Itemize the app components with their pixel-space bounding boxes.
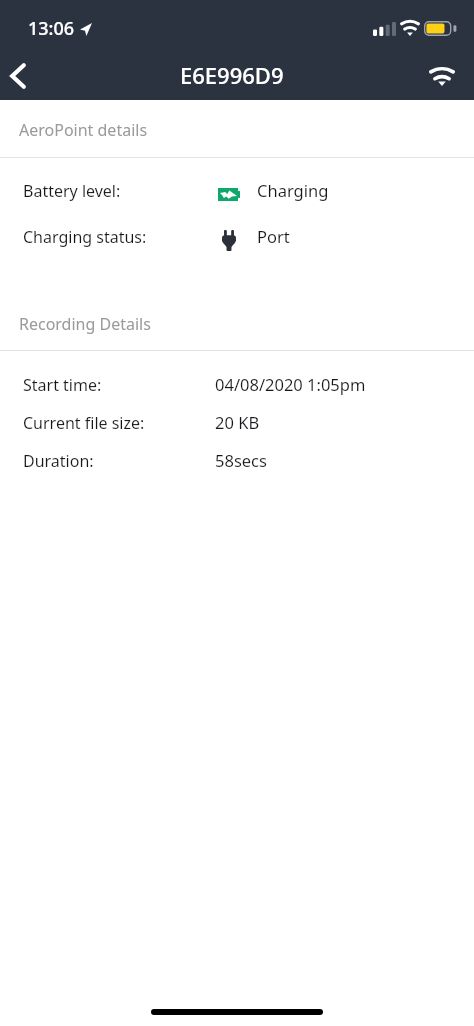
button[interactable]: Wi-Fi <box>416 48 468 100</box>
staticText: 58secs <box>215 449 267 471</box>
staticText: Battery level: <box>23 180 121 202</box>
staticText: Duration: <box>23 450 94 472</box>
staticText: Port <box>257 225 290 247</box>
staticText: Current file size: <box>23 412 145 434</box>
staticText: Recording Details <box>19 313 151 335</box>
other: Battery charging <box>218 188 240 201</box>
button[interactable]: Back <box>0 48 40 100</box>
button[interactable]: Start time: <box>0 363 474 401</box>
staticText: 20 KB <box>215 411 260 433</box>
button[interactable]: Duration: <box>0 439 474 477</box>
other: Power plug <box>222 230 236 251</box>
button[interactable]: Battery level: <box>0 168 474 206</box>
staticText: Charging <box>257 179 329 201</box>
staticText: AeroPoint details <box>19 119 148 141</box>
staticText: Charging status: <box>23 226 147 248</box>
staticText: Start time: <box>23 374 102 396</box>
staticText: 13:06 <box>28 16 75 41</box>
staticText: 04/08/2020 1:05pm <box>215 373 366 395</box>
button[interactable]: Current file size: <box>0 401 474 439</box>
button[interactable]: Charging status: <box>0 214 474 252</box>
staticText: E6E996D9 <box>180 60 284 90</box>
